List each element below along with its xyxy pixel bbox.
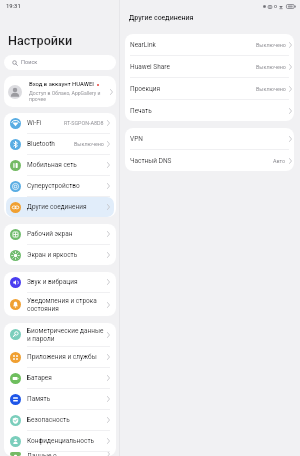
staticText: Конфиденциальность — [27, 437, 95, 445]
button[interactable]: Суперустройство — [6, 176, 114, 196]
button[interactable]: Экран и яркость — [6, 245, 114, 265]
button[interactable]: Данные о местоположении — [6, 452, 114, 456]
button[interactable]: Память — [6, 389, 114, 409]
button[interactable]: Безопасность — [6, 410, 114, 430]
staticText: Настройки — [8, 33, 73, 48]
button[interactable]: Частный DNS — [125, 150, 294, 171]
staticText: Авто — [273, 158, 286, 164]
staticText: Поиск — [21, 59, 38, 66]
staticText: Уведомления и строка состояния — [27, 297, 107, 313]
button[interactable]: Проекция — [125, 78, 294, 99]
button[interactable]: Мобильная сеть — [6, 155, 114, 175]
staticText: Выключено — [74, 141, 104, 147]
staticText: Bluetooth — [27, 140, 55, 148]
staticText: Другие соединения — [129, 14, 194, 22]
staticText: NearLink — [130, 41, 156, 49]
staticText: Huawei Share — [130, 63, 170, 71]
button[interactable]: Поиск — [4, 55, 116, 70]
staticText: Wi-Fi — [27, 119, 42, 127]
button[interactable]: NearLink — [125, 34, 294, 55]
button[interactable]: Приложения и службы — [6, 347, 114, 367]
staticText: RT-SGPON-A8D8 — [64, 120, 104, 126]
button[interactable]: Конфиденциальность — [6, 431, 114, 451]
staticText: Безопасность — [27, 416, 70, 424]
button[interactable]: Звук и вибрация — [6, 272, 114, 292]
staticText: Выключено — [256, 86, 286, 92]
staticText: Суперустройство — [27, 182, 80, 190]
staticText: Доступ в Облако, AppGallery и прочее — [29, 90, 108, 103]
staticText: Вход в аккаунт HUAWEI — [29, 81, 95, 88]
staticText: Биометрические данные и пароли — [27, 327, 107, 343]
button[interactable]: Батарея — [6, 368, 114, 388]
staticText: VPN — [130, 135, 143, 143]
staticText: Выключено — [256, 42, 286, 48]
button[interactable]: Биометрические данные и пароли — [6, 323, 114, 346]
staticText: Память — [27, 395, 51, 403]
staticText: Батарея — [27, 374, 52, 382]
staticText: Приложения и службы — [27, 353, 97, 361]
staticText: Частный DNS — [130, 157, 172, 165]
button[interactable]: Wi-Fi — [6, 113, 114, 133]
staticText: Выключено — [256, 64, 286, 70]
button[interactable]: Печать — [125, 100, 294, 121]
button[interactable]: Bluetooth — [6, 134, 114, 154]
staticText: 19:31 — [6, 3, 21, 10]
button[interactable]: Другие соединения — [6, 197, 114, 217]
staticText: Экран и яркость — [27, 251, 78, 259]
button[interactable]: Huawei Share — [125, 56, 294, 77]
button[interactable]: VPN — [125, 128, 294, 149]
staticText: Рабочий экран — [27, 230, 73, 238]
button[interactable]: Рабочий экран — [6, 224, 114, 244]
staticText: Мобильная сеть — [27, 161, 77, 169]
button[interactable]: Вход в аккаунт HUAWEI — [4, 76, 116, 107]
staticText: Печать — [130, 107, 152, 115]
staticText: Проекция — [130, 85, 161, 93]
staticText: Другие соединения — [27, 203, 87, 211]
staticText: Звук и вибрация — [27, 278, 78, 286]
button[interactable]: Уведомления и строка состояния — [6, 293, 114, 316]
staticText: Данные о местоположении — [27, 452, 107, 456]
